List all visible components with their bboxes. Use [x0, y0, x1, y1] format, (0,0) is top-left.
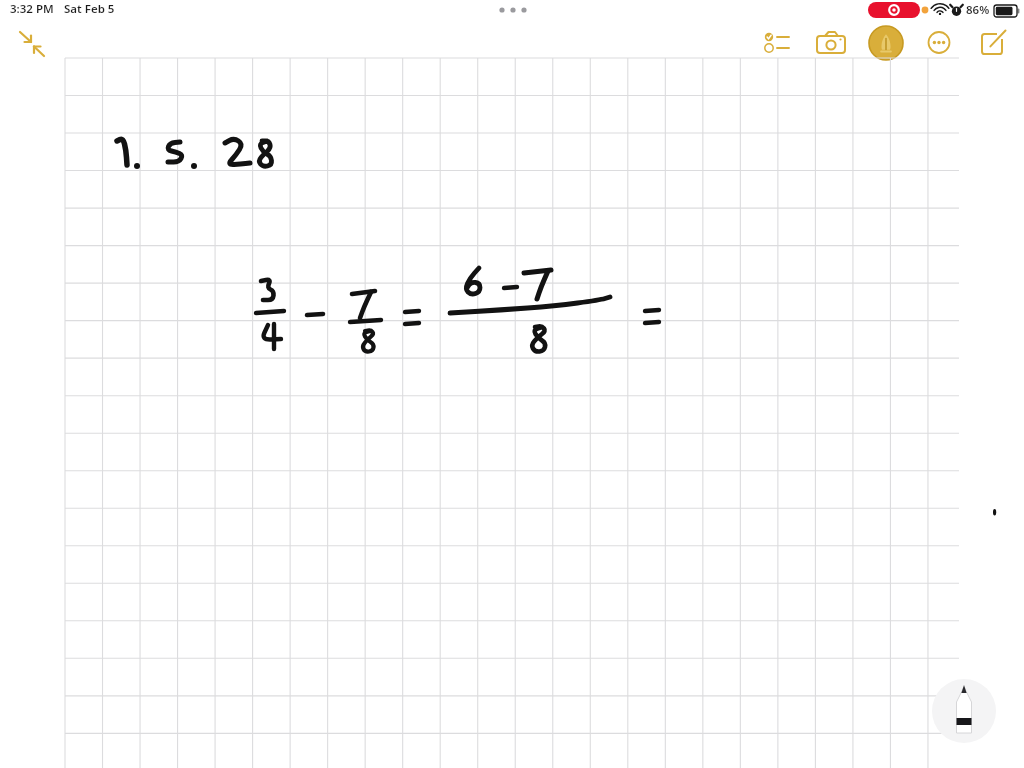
button[interactable]: Pen tool: [867, 24, 905, 62]
button[interactable]: More options: [920, 24, 958, 60]
button[interactable]: Checklist: [758, 24, 796, 60]
button[interactable]: Pen: [932, 679, 996, 743]
staticText: 3:32 PM: [10, 1, 54, 17]
button[interactable]: Camera: [812, 24, 850, 60]
button[interactable]: Collapse: [14, 26, 52, 60]
staticText: 86%: [966, 2, 990, 18]
button[interactable]: New note: [974, 24, 1012, 60]
staticText: Sat Feb 5: [64, 1, 115, 17]
